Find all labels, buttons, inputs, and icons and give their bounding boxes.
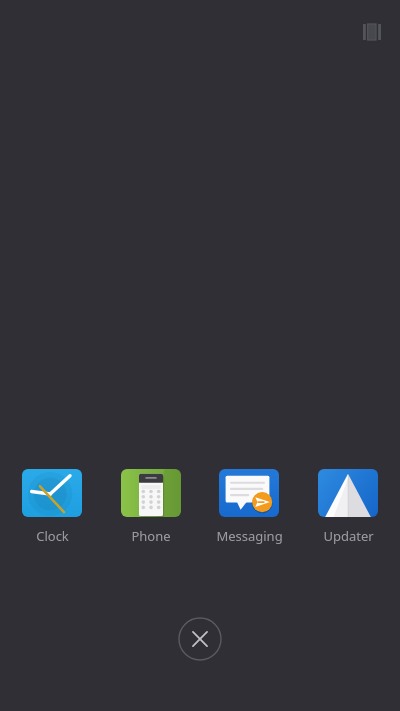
staticText: Updater: [323, 527, 374, 545]
staticText: Clock: [36, 527, 69, 545]
button[interactable]: Messaging: [203, 462, 295, 545]
button[interactable]: Clock: [6, 462, 98, 545]
button[interactable]: Close: [178, 617, 222, 661]
staticText: Messaging: [216, 527, 283, 545]
button[interactable]: Recent apps: [358, 18, 386, 46]
staticText: Phone: [131, 527, 171, 545]
button[interactable]: Phone: [105, 462, 197, 545]
button[interactable]: Updater: [302, 462, 394, 545]
